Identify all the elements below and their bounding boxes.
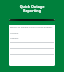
staticText: Account xyxy=(10,32,19,35)
staticText: Quick Outage Reporting xyxy=(0,4,64,13)
staticText: Address xyxy=(10,37,19,40)
staticText: Report an outage at your service address xyxy=(10,26,53,29)
